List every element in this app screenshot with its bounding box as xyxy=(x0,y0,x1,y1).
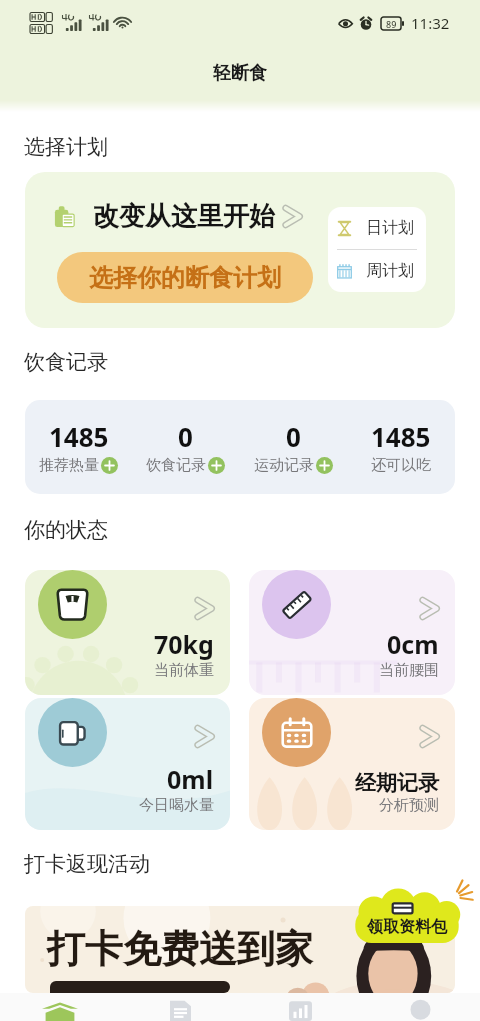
button[interactable]: 0 xyxy=(132,419,239,475)
staticText: 89 xyxy=(386,18,397,30)
staticText: 0 xyxy=(286,419,301,454)
staticText: 今日喝水量 xyxy=(139,796,214,815)
staticText: 推荐热量 xyxy=(39,456,99,475)
staticText: 0 xyxy=(178,419,193,454)
staticText: 选择你的断食计划 xyxy=(89,263,281,293)
button[interactable]: 0 xyxy=(239,419,347,475)
button[interactable]: 日计划 xyxy=(336,207,426,249)
staticText: 还可以吃 xyxy=(371,456,431,475)
button[interactable]: 经期记录 xyxy=(249,698,455,830)
button[interactable]: 记录 xyxy=(120,993,240,1021)
staticText: 1485 xyxy=(49,419,109,454)
button[interactable]: 1485 xyxy=(25,419,132,475)
staticText: 经期记录 xyxy=(355,770,439,796)
staticText: 周计划 xyxy=(366,261,414,281)
button[interactable]: 选择你的断食计划 xyxy=(57,252,313,303)
staticText: 饮食记录 xyxy=(24,349,108,375)
staticText: 领取资料包 xyxy=(367,917,447,937)
staticText: 0cm xyxy=(387,627,439,661)
button[interactable]: 0cm xyxy=(249,570,455,695)
staticText: 11:32 xyxy=(411,13,450,33)
button[interactable]: 首页 xyxy=(0,993,120,1021)
staticText: 1485 xyxy=(371,419,431,454)
staticText: 选择计划 xyxy=(24,134,108,160)
staticText: 饮食记录 xyxy=(146,456,206,475)
button[interactable]: 70kg xyxy=(25,570,230,695)
staticText: 打卡返现活动 xyxy=(24,851,150,877)
staticText: 打卡免费送到家 xyxy=(47,925,313,973)
staticText: 你的状态 xyxy=(24,517,108,543)
button[interactable]: 0ml xyxy=(25,698,230,830)
staticText: 运动记录 xyxy=(254,456,314,475)
button[interactable]: 打卡免费送到家 xyxy=(25,906,455,993)
button[interactable]: 统计 xyxy=(240,993,360,1021)
button[interactable]: 我的 xyxy=(360,993,480,1021)
staticText: 改变从这里开始 xyxy=(93,200,275,233)
button[interactable]: 改变从这里开始 xyxy=(25,172,455,328)
button[interactable]: 领取资料包 xyxy=(352,886,462,948)
staticText: 当前腰围 xyxy=(379,661,439,680)
button[interactable]: 周计划 xyxy=(336,250,426,292)
staticText: 分析预测 xyxy=(379,796,439,815)
staticText: 日计划 xyxy=(366,218,414,238)
staticText: 0ml xyxy=(167,762,214,796)
staticText: 70kg xyxy=(154,627,214,661)
staticText: 当前体重 xyxy=(154,661,214,680)
button[interactable]: 1485 xyxy=(347,419,455,475)
staticText: 轻断食 xyxy=(213,62,267,85)
